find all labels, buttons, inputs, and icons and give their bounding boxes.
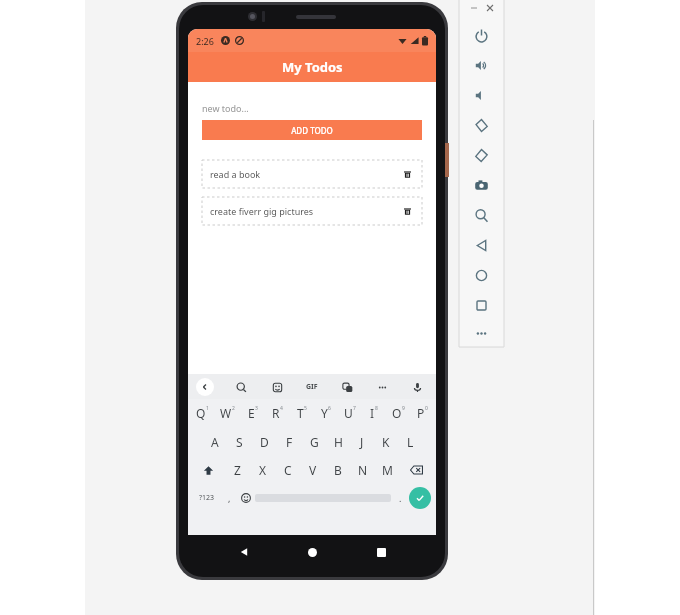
button[interactable]: Backspace: [400, 461, 433, 479]
staticText: 8: [375, 405, 378, 412]
button[interactable]: S: [227, 433, 252, 451]
staticText: H: [334, 434, 343, 450]
button[interactable]: I: [362, 403, 386, 423]
button[interactable]: Y: [314, 403, 338, 423]
button[interactable]: Stickers: [268, 378, 286, 396]
button[interactable]: Power: [459, 20, 504, 50]
staticText: T: [297, 405, 304, 421]
button[interactable]: Take screenshot: [459, 170, 504, 200]
staticText: J: [360, 434, 364, 450]
staticText: Y: [321, 405, 328, 421]
staticText: 3: [255, 405, 258, 412]
button[interactable]: create fiverr gig pictures: [202, 197, 422, 225]
button[interactable]: Rotate right: [459, 140, 504, 170]
staticText: My Todos: [282, 58, 343, 76]
button[interactable]: Overview: [459, 290, 504, 320]
staticText: D: [260, 434, 269, 450]
button[interactable]: J: [350, 433, 374, 451]
staticText: read a book: [210, 168, 261, 180]
button[interactable]: Back: [231, 539, 257, 565]
button[interactable]: C: [275, 461, 300, 479]
button[interactable]: Volume down: [459, 80, 504, 110]
staticText: GIF: [306, 382, 318, 392]
staticText: 4: [280, 405, 283, 412]
button[interactable]: U: [338, 403, 362, 423]
staticText: 2: [232, 405, 235, 412]
staticText: U: [344, 405, 353, 421]
staticText: X: [259, 462, 267, 478]
staticText: Q: [196, 405, 206, 421]
button[interactable]: Enter: [409, 487, 431, 509]
staticText: M: [382, 462, 393, 478]
button[interactable]: Comma: [221, 487, 237, 509]
button[interactable]: M: [375, 461, 400, 479]
staticText: 1: [206, 405, 209, 412]
button[interactable]: H: [326, 433, 350, 451]
button[interactable]: Home: [299, 539, 325, 565]
button[interactable]: Delete create fiverr gig pictures: [400, 204, 414, 218]
staticText: 9: [402, 405, 405, 412]
button[interactable]: Period: [391, 487, 409, 509]
button[interactable]: Close toolbar: [196, 378, 214, 396]
button[interactable]: X: [250, 461, 275, 479]
button[interactable]: ?123: [193, 487, 221, 509]
staticText: 2:26: [196, 35, 214, 47]
button[interactable]: V: [300, 461, 325, 479]
button[interactable]: Z: [225, 461, 250, 479]
button[interactable]: G: [302, 433, 326, 451]
button[interactable]: Back: [459, 230, 504, 260]
staticText: ,: [228, 492, 231, 504]
button[interactable]: P: [410, 403, 434, 423]
button[interactable]: Close: [484, 2, 495, 13]
button[interactable]: Home: [459, 260, 504, 290]
button[interactable]: Rotate left: [459, 110, 504, 140]
staticText: create fiverr gig pictures: [210, 205, 314, 217]
button[interactable]: N: [350, 461, 375, 479]
staticText: ?123: [199, 493, 215, 503]
staticText: G: [310, 434, 319, 450]
button[interactable]: Volume up: [459, 50, 504, 80]
button[interactable]: W: [215, 403, 240, 423]
button[interactable]: A: [202, 433, 227, 451]
button[interactable]: K: [374, 433, 398, 451]
staticText: Z: [234, 462, 241, 478]
button[interactable]: Recent apps: [368, 539, 394, 565]
button[interactable]: Delete read a book: [400, 167, 414, 181]
button[interactable]: Minimize: [468, 2, 479, 13]
button[interactable]: new todo...: [202, 101, 422, 115]
button[interactable]: Emoji: [237, 487, 255, 509]
staticText: P: [417, 405, 425, 421]
staticText: N: [358, 462, 368, 478]
staticText: R: [272, 405, 280, 421]
staticText: ADD TODO: [291, 125, 333, 136]
staticText: 7: [353, 405, 356, 412]
button[interactable]: D: [252, 433, 277, 451]
button[interactable]: ADD TODO: [202, 120, 422, 140]
staticText: S: [236, 434, 243, 450]
staticText: 6: [328, 405, 331, 412]
button[interactable]: GIF: [303, 378, 321, 396]
button[interactable]: More options: [373, 378, 391, 396]
button[interactable]: E: [240, 403, 265, 423]
button[interactable]: Voice input: [408, 378, 426, 396]
button[interactable]: Translate: [338, 378, 356, 396]
button[interactable]: read a book: [202, 160, 422, 188]
staticText: O: [392, 405, 402, 421]
staticText: V: [309, 462, 317, 478]
button[interactable]: More: [459, 320, 504, 347]
button[interactable]: Shift: [191, 461, 225, 479]
staticText: K: [382, 434, 390, 450]
button[interactable]: F: [277, 433, 302, 451]
button[interactable]: T: [290, 403, 314, 423]
button[interactable]: Search: [232, 378, 250, 396]
button[interactable]: Zoom: [459, 200, 504, 230]
button[interactable]: L: [398, 433, 422, 451]
button[interactable]: R: [265, 403, 290, 423]
staticText: B: [334, 462, 342, 478]
staticText: 5: [304, 405, 307, 412]
button[interactable]: O: [386, 403, 410, 423]
staticText: F: [286, 434, 293, 450]
button[interactable]: Q: [190, 403, 215, 423]
button[interactable]: B: [325, 461, 350, 479]
